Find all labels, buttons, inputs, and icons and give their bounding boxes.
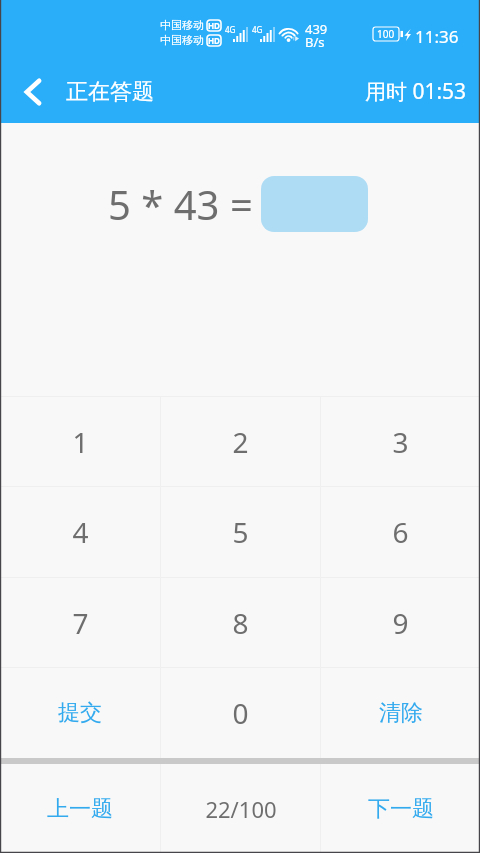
button[interactable]: 6 bbox=[321, 487, 480, 577]
staticText: 3 bbox=[392, 423, 409, 461]
staticText: 清除 bbox=[379, 699, 423, 727]
button[interactable]: Back bbox=[8, 60, 58, 123]
staticText: 4G bbox=[225, 24, 236, 35]
button[interactable]: 1 bbox=[0, 397, 160, 486]
staticText: 中国移动 bbox=[160, 33, 204, 47]
button[interactable]: 清除 bbox=[321, 668, 480, 758]
button[interactable]: 3 bbox=[321, 397, 480, 486]
staticText: 22/100 bbox=[205, 794, 277, 824]
staticText: 6 bbox=[392, 513, 409, 551]
staticText: 439 bbox=[305, 20, 328, 38]
staticText: HD bbox=[208, 35, 220, 46]
button[interactable]: 8 bbox=[161, 578, 320, 667]
button[interactable]: 9 bbox=[321, 578, 480, 667]
staticText: 4 bbox=[72, 513, 89, 551]
button[interactable]: Answer input bbox=[261, 176, 368, 232]
staticText: 0 bbox=[232, 694, 249, 732]
button[interactable]: 上一题 bbox=[0, 764, 160, 853]
staticText: 8 bbox=[232, 604, 249, 642]
staticText: 用时 01:53 bbox=[365, 77, 467, 106]
staticText: 11:36 bbox=[415, 25, 459, 48]
staticText: B/s bbox=[305, 33, 325, 51]
staticText: 5 bbox=[232, 513, 249, 551]
button[interactable]: 2 bbox=[161, 397, 320, 486]
staticText: 上一题 bbox=[47, 795, 113, 823]
button[interactable]: 5 bbox=[161, 487, 320, 577]
button[interactable]: 0 bbox=[161, 668, 320, 758]
staticText: 提交 bbox=[58, 699, 102, 727]
staticText: 4G bbox=[252, 24, 263, 35]
staticText: 9 bbox=[392, 604, 409, 642]
staticText: 下一题 bbox=[368, 795, 434, 823]
staticText: 中国移动 bbox=[160, 18, 204, 32]
staticText: 正在答题 bbox=[66, 78, 154, 106]
staticText: 2 bbox=[232, 423, 249, 461]
staticText: 5 * 43 = bbox=[108, 177, 253, 231]
button[interactable]: 4 bbox=[0, 487, 160, 577]
button[interactable]: 22/100 bbox=[161, 764, 320, 853]
button[interactable]: 提交 bbox=[0, 668, 160, 758]
button[interactable]: 7 bbox=[0, 578, 160, 667]
staticText: 100 bbox=[377, 27, 395, 41]
staticText: 7 bbox=[72, 604, 89, 642]
button[interactable]: 下一题 bbox=[321, 764, 480, 853]
staticText: 1 bbox=[72, 423, 89, 461]
staticText: HD bbox=[208, 20, 220, 31]
